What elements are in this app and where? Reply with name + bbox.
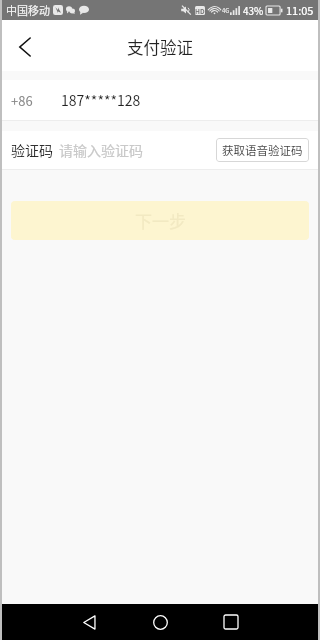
button[interactable]: Recents xyxy=(213,604,249,640)
staticText: 获取语音验证码 xyxy=(222,142,303,159)
staticText: 验证码 xyxy=(11,140,53,160)
staticText: 中国移动 xyxy=(6,2,50,18)
staticText: 4G xyxy=(222,6,230,15)
staticText: 11:05 xyxy=(286,2,314,18)
staticText: 请输入验证码 xyxy=(59,140,143,160)
staticText: +86 xyxy=(11,91,33,110)
staticText: 187*****128 xyxy=(61,90,141,110)
staticText: 下一步 xyxy=(135,208,186,233)
staticText: 43% xyxy=(243,3,264,17)
staticText: 支付验证 xyxy=(127,35,193,59)
staticText: HD xyxy=(195,6,205,15)
button[interactable]: Back xyxy=(71,604,107,640)
button[interactable]: 获取语音验证码 xyxy=(216,138,309,162)
button[interactable]: Back xyxy=(2,24,48,70)
button[interactable]: Home xyxy=(142,604,178,640)
